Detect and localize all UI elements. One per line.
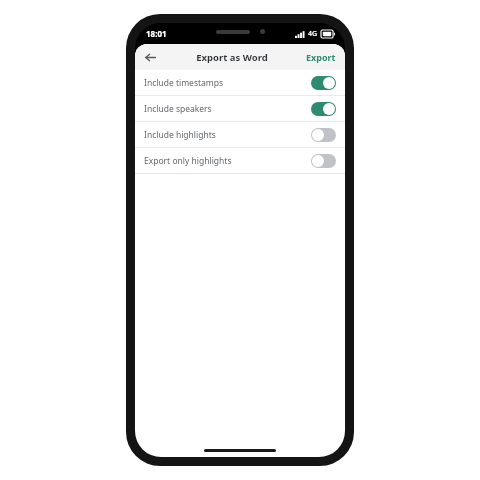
- staticText: 4G: [308, 29, 318, 39]
- button[interactable]: Back: [140, 47, 160, 67]
- button[interactable]: Include timestamps: [135, 70, 345, 95]
- button[interactable]: Export: [304, 48, 338, 66]
- staticText: Export as Word: [196, 51, 268, 64]
- button[interactable]: Export only highlights: [135, 148, 345, 173]
- staticText: Export only highlights: [144, 155, 311, 167]
- button[interactable]: Toggle: [311, 154, 336, 168]
- button[interactable]: Include speakers: [135, 96, 345, 121]
- button[interactable]: Toggle: [311, 76, 336, 90]
- button[interactable]: Toggle: [311, 102, 336, 116]
- staticText: Export: [306, 51, 336, 63]
- staticText: Include highlights: [144, 129, 311, 141]
- button[interactable]: Include highlights: [135, 122, 345, 147]
- button[interactable]: Toggle: [311, 128, 336, 142]
- staticText: Include speakers: [144, 103, 311, 115]
- staticText: 18:01: [146, 28, 167, 39]
- staticText: Include timestamps: [144, 77, 311, 89]
